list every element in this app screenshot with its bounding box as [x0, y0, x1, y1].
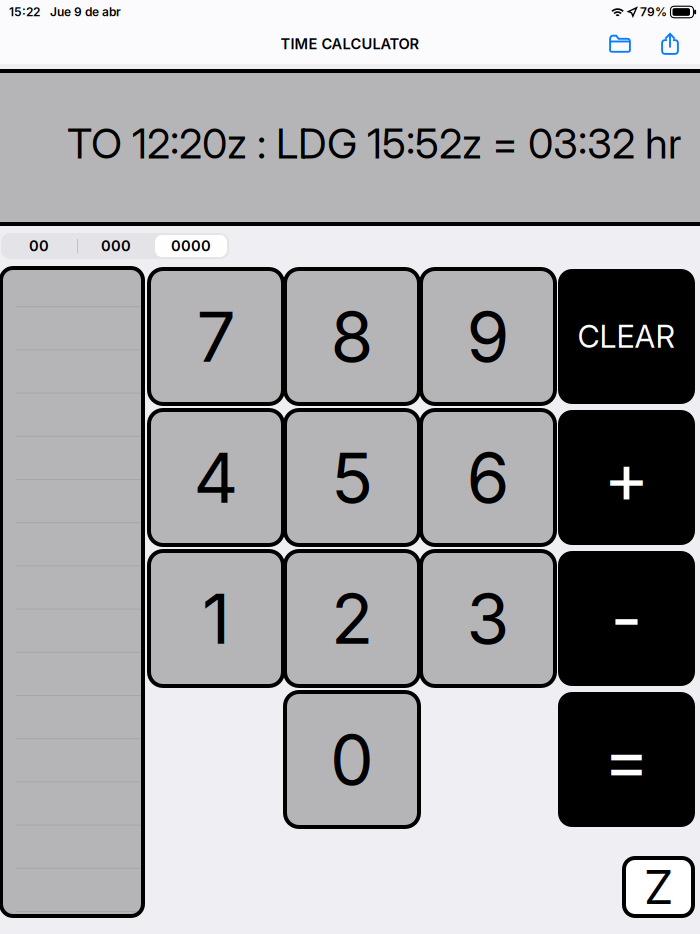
button[interactable]: 6: [421, 410, 555, 545]
staticText: 3: [466, 577, 509, 660]
staticText: =: [603, 718, 649, 801]
staticText: 000: [101, 237, 131, 255]
button[interactable]: Z: [624, 858, 693, 916]
staticText: CLEAR: [577, 318, 675, 355]
staticText: 79%: [640, 5, 667, 19]
button[interactable]: +: [558, 410, 695, 545]
staticText: TO 12:20z : LDG 15:52z = 03:32 hr: [67, 118, 681, 168]
staticText: 2: [331, 577, 373, 660]
staticText: 0: [330, 718, 374, 801]
button[interactable]: 7: [149, 269, 283, 404]
button[interactable]: Share: [645, 24, 695, 64]
button[interactable]: 4: [149, 410, 283, 545]
button[interactable]: -: [558, 551, 695, 686]
staticText: 5: [331, 436, 373, 519]
button[interactable]: 3: [421, 551, 555, 686]
button[interactable]: 8: [285, 269, 419, 404]
button[interactable]: 1: [149, 551, 283, 686]
button[interactable]: 0: [285, 692, 419, 827]
button[interactable]: 9: [421, 269, 555, 404]
staticText: 1: [202, 577, 230, 660]
staticText: 7: [196, 295, 235, 378]
staticText: Jue 9 de abr: [50, 5, 121, 19]
button[interactable]: =: [558, 692, 695, 827]
staticText: -: [610, 577, 642, 660]
staticText: 4: [193, 436, 238, 519]
button[interactable]: Saved calculations: [595, 24, 645, 64]
staticText: 00: [29, 237, 49, 255]
button[interactable]: CLEAR: [558, 269, 695, 404]
button[interactable]: 2: [285, 551, 419, 686]
button[interactable]: 00: [1, 233, 77, 259]
staticText: +: [603, 436, 649, 519]
button[interactable]: 5: [285, 410, 419, 545]
button[interactable]: 0000: [155, 235, 227, 257]
staticText: 15:22: [9, 5, 40, 19]
staticText: 6: [466, 436, 509, 519]
staticText: Z: [644, 859, 673, 915]
button[interactable]: 000: [78, 233, 154, 259]
staticText: TIME CALCULATOR: [280, 35, 419, 53]
staticText: 8: [330, 295, 373, 378]
staticText: 0000: [171, 237, 211, 255]
staticText: 9: [466, 295, 509, 378]
